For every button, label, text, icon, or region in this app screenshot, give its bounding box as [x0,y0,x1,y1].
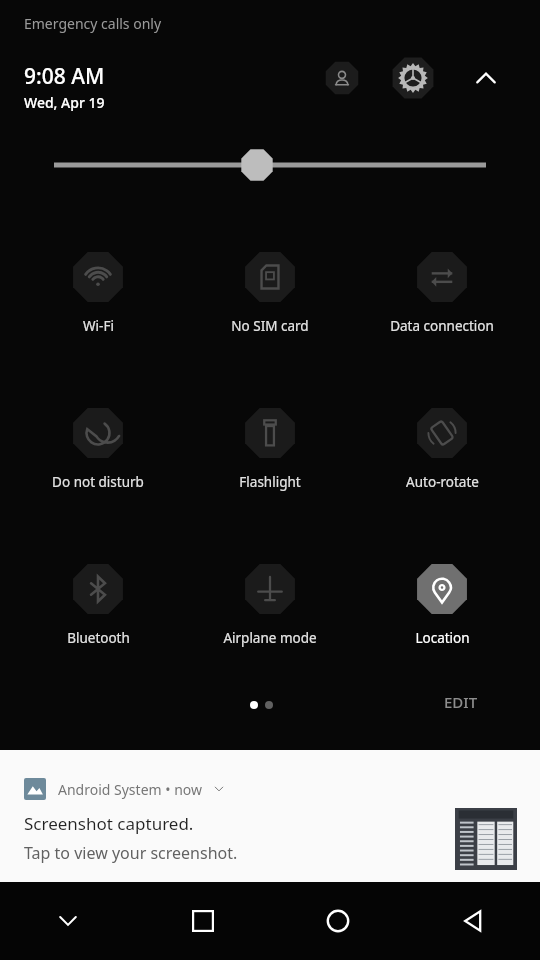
button[interactable]: User [322,58,362,98]
button[interactable]: Auto-rotate [357,406,527,491]
staticText: Wi-Fi [83,317,114,335]
staticText: Emergency calls only [24,14,162,33]
staticText: Screenshot captured. [24,812,194,835]
button[interactable]: Brightness [0,145,540,185]
button[interactable]: Settings [389,54,437,102]
button[interactable]: Do not disturb [13,406,183,491]
button[interactable]: No SIM card [185,250,355,335]
button[interactable]: Collapse [466,58,506,98]
button[interactable]: Recents [135,882,270,960]
staticText: Bluetooth [67,629,130,647]
button[interactable]: Location [357,562,527,647]
staticText: Data connection [390,317,494,335]
staticText: Auto-rotate [406,473,479,491]
button[interactable]: Bluetooth [13,562,183,647]
button[interactable]: Wi-Fi [13,250,183,335]
button[interactable]: Airplane mode [185,562,355,647]
button[interactable]: Data connection [357,250,527,335]
staticText: Flashlight [239,473,301,491]
staticText: Wed, Apr 19 [24,93,105,112]
button[interactable]: Dismiss [0,882,135,960]
staticText: No SIM card [231,317,309,335]
staticText: Tap to view your screenshot. [24,842,238,864]
staticText: Location [415,629,470,647]
staticText: Airplane mode [223,629,317,647]
button[interactable]: 9:08 AM [24,62,105,112]
button[interactable]: Home [270,882,405,960]
staticText: Do not disturb [52,473,144,491]
button[interactable]: Back [405,882,540,960]
staticText: Android System • now [58,780,203,799]
button[interactable]: Android System • now [0,750,540,882]
button[interactable]: EDIT [436,686,486,718]
button[interactable]: Flashlight [185,406,355,491]
staticText: EDIT [444,692,478,712]
staticText: 9:08 AM [24,62,105,91]
